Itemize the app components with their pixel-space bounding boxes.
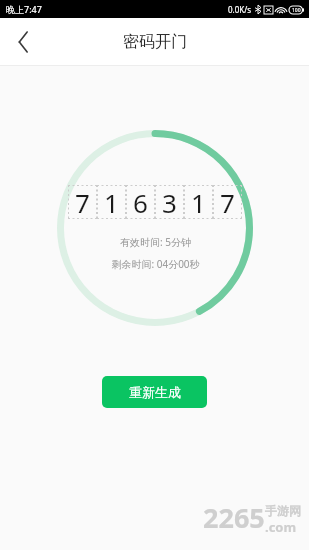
staticText: 有效时间: 5分钟 xyxy=(120,235,191,249)
staticText: 手游网 xyxy=(265,503,301,518)
staticText: .com xyxy=(265,518,297,536)
staticText: 2265 xyxy=(203,499,265,536)
staticText: 3 xyxy=(162,185,177,219)
staticText: 重新生成 xyxy=(129,384,181,400)
staticText: 1 xyxy=(191,185,206,219)
button[interactable]: 重新生成 xyxy=(102,376,207,408)
staticText: 6 xyxy=(133,185,148,219)
staticText: 剩余时间: 04分00秒 xyxy=(111,257,200,271)
staticText: 100 xyxy=(292,7,301,14)
button[interactable]: Back xyxy=(0,19,46,65)
staticText: 7 xyxy=(220,185,235,219)
staticText: 1 xyxy=(104,185,119,219)
staticText: 晚上7:47 xyxy=(6,3,42,15)
staticText: 0.0K/s xyxy=(228,4,252,15)
staticText: 7 xyxy=(75,185,90,219)
staticText: 密码开门 xyxy=(123,32,187,52)
